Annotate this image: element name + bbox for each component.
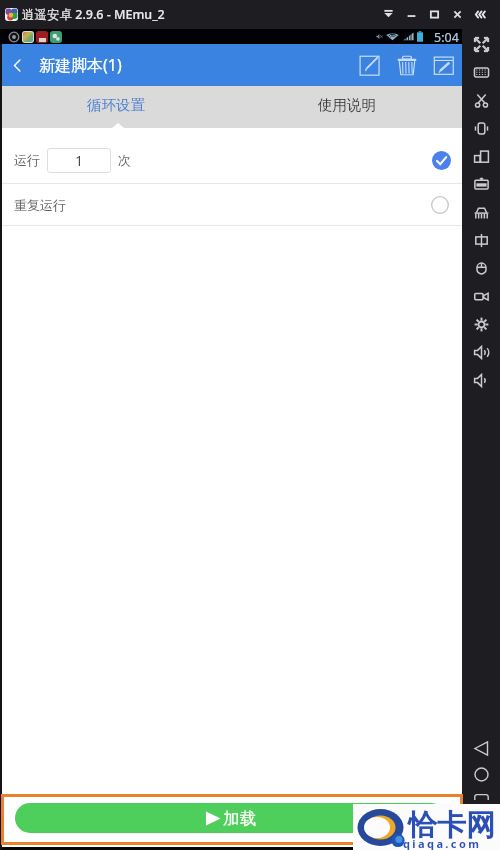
- button[interactable]: 返回: [462, 735, 500, 761]
- button[interactable]: 隐藏工具栏: [469, 5, 492, 24]
- staticText: 次: [118, 152, 131, 168]
- staticText: qiaqa.com: [403, 836, 482, 850]
- staticText: 运行: [14, 152, 40, 168]
- button[interactable]: 主页: [462, 761, 500, 787]
- button[interactable]: 摇一摇: [462, 114, 500, 142]
- button[interactable]: 设置: [462, 310, 500, 338]
- button[interactable]: 使用说明: [231, 86, 462, 123]
- button[interactable]: 音量加: [462, 338, 500, 366]
- button[interactable]: 重命名: [429, 44, 459, 86]
- staticText: 1: [75, 151, 84, 170]
- button[interactable]: 最近任务: [462, 787, 500, 813]
- button[interactable]: 编辑: [355, 44, 385, 86]
- button[interactable]: 删除: [392, 44, 422, 86]
- button[interactable]: 旋转: [462, 142, 500, 170]
- staticText: 5:04: [434, 29, 459, 44]
- button[interactable]: 键盘: [462, 58, 500, 86]
- button[interactable]: 同步: [462, 226, 500, 254]
- button[interactable]: 返回: [0, 44, 34, 86]
- button[interactable]: 重复运行: [0, 184, 462, 225]
- button[interactable]: 最小化: [400, 5, 423, 24]
- staticText: 逍遥安卓 2.9.6 - MEmu_2: [22, 6, 165, 23]
- button[interactable]: 安装APK: [462, 170, 500, 198]
- button[interactable]: 循环设置: [0, 86, 231, 123]
- button[interactable]: 截图: [462, 86, 500, 114]
- button[interactable]: 关闭: [446, 5, 469, 24]
- staticText: 使用说明: [318, 96, 376, 114]
- staticText: 重复运行: [14, 197, 66, 213]
- staticText: 加载: [223, 808, 256, 829]
- button[interactable]: 多开: [462, 198, 500, 226]
- button[interactable]: 音量减: [462, 366, 500, 394]
- staticText: 恰卡网: [408, 807, 495, 844]
- button[interactable]: 全屏: [462, 30, 500, 58]
- button[interactable]: 收起: [377, 5, 400, 24]
- button[interactable]: 加载: [15, 803, 446, 833]
- button[interactable]: 录屏: [462, 282, 500, 310]
- button[interactable]: 运行: [0, 128, 462, 183]
- staticText: 循环设置: [87, 96, 145, 114]
- button[interactable]: 最大化: [423, 5, 446, 24]
- button[interactable]: 鼠标: [462, 254, 500, 282]
- staticText: 新建脚本(1): [39, 54, 122, 76]
